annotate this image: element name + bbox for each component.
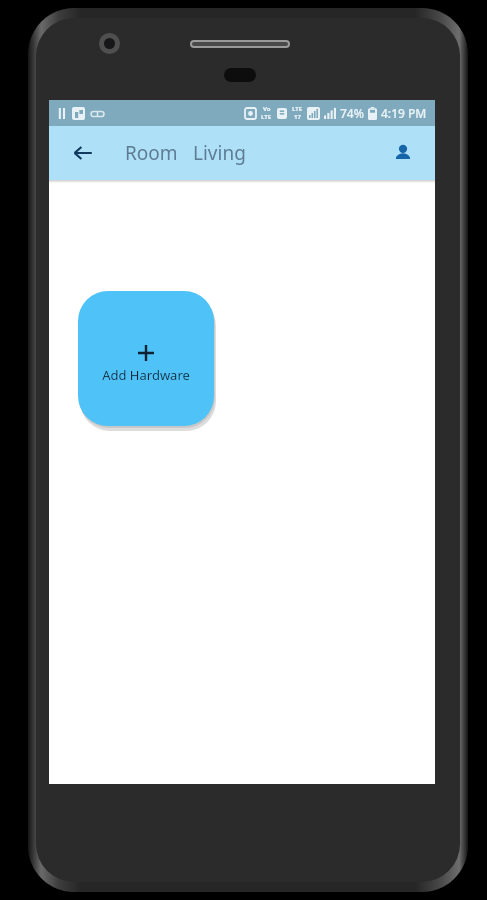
staticText: 17 <box>294 113 301 121</box>
staticText: Room <box>125 140 178 166</box>
staticText: LTE <box>292 105 303 113</box>
staticText: Vo <box>263 105 271 113</box>
staticText: 4:19 PM <box>381 105 427 121</box>
button[interactable]: Account <box>383 133 423 173</box>
staticText: Add Hardware <box>102 366 190 384</box>
button[interactable]: Add Hardware <box>78 291 214 426</box>
staticText: Living <box>193 140 246 166</box>
button[interactable]: Back <box>63 133 103 173</box>
staticText: 74% <box>340 105 364 121</box>
staticText: LTE <box>261 113 272 121</box>
